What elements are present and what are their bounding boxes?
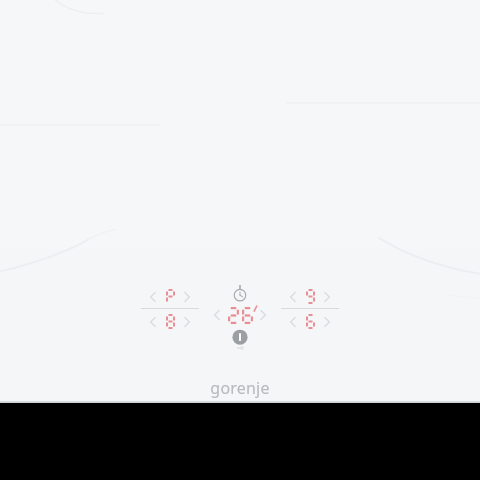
button[interactable]: Power on off <box>228 327 252 351</box>
button[interactable] <box>159 286 181 307</box>
button[interactable]: Decrease right rear power level <box>287 289 299 305</box>
button[interactable]: Increase left rear power level <box>181 289 193 305</box>
button[interactable]: Increase left front power level <box>181 314 193 330</box>
button[interactable]: Decrease left rear power level <box>147 289 159 305</box>
button[interactable]: Increase timer <box>257 307 269 323</box>
button[interactable] <box>159 311 181 332</box>
button[interactable]: Decrease left front power level <box>147 314 159 330</box>
button[interactable]: Decrease timer <box>211 307 223 323</box>
button[interactable]: Increase right rear power level <box>321 289 333 305</box>
button[interactable] <box>299 311 321 332</box>
button[interactable]: Timer <box>230 283 250 303</box>
staticText: gorenje <box>210 377 270 399</box>
button[interactable]: Increase right front power level <box>321 314 333 330</box>
button[interactable] <box>223 304 257 326</box>
button[interactable] <box>299 286 321 307</box>
button[interactable]: Decrease right front power level <box>287 314 299 330</box>
